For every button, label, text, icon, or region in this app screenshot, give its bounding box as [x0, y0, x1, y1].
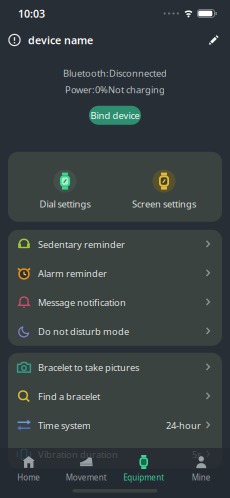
button[interactable]: Mine	[172, 455, 230, 483]
button[interactable]: Vibration duration	[8, 440, 222, 469]
staticText: Screen settings	[132, 198, 196, 210]
button[interactable]: Screen settings	[124, 164, 204, 210]
staticText: Do not disturb mode	[38, 325, 129, 337]
button[interactable]: Edit device name	[207, 33, 230, 46]
button[interactable]: Find a bracelet	[8, 382, 222, 411]
staticText: 10:03	[18, 6, 45, 21]
staticText: Message notification	[38, 296, 126, 308]
staticText: 5s	[192, 448, 201, 460]
button[interactable]: Time system	[8, 411, 222, 440]
staticText: Time system	[38, 419, 91, 431]
button[interactable]: Bind device	[89, 106, 141, 125]
staticText: Find a bracelet	[38, 390, 100, 402]
staticText: Vibration duration	[38, 448, 118, 460]
staticText: Bracelet to take pictures	[38, 361, 139, 373]
staticText: Mine	[192, 472, 211, 483]
button[interactable]: Alarm reminder	[8, 259, 222, 288]
staticText: Power:0%Not charging	[65, 83, 165, 96]
button[interactable]: Device info	[0, 33, 21, 46]
staticText: Equipment	[123, 472, 164, 483]
button[interactable]: Home	[0, 455, 57, 483]
staticText: Dial settings	[39, 198, 90, 210]
button[interactable]: Dial settings	[30, 164, 100, 210]
button[interactable]: Sedentary reminder	[8, 230, 222, 259]
staticText: Home	[17, 472, 40, 483]
button[interactable]: Movement	[57, 455, 115, 483]
button[interactable]: Do not disturb mode	[8, 317, 222, 346]
button[interactable]: Message notification	[8, 288, 222, 317]
staticText: Alarm reminder	[38, 267, 107, 279]
button[interactable]: Equipment	[115, 455, 172, 483]
staticText: Bluetooth:Disconnected	[63, 67, 167, 79]
staticText: Sedentary reminder	[38, 238, 125, 250]
staticText: Movement	[66, 472, 107, 483]
button[interactable]: Bracelet to take pictures	[8, 353, 222, 382]
staticText: device name	[28, 33, 93, 47]
staticText: Bind device	[90, 109, 139, 121]
staticText: 24-hour	[166, 419, 201, 431]
